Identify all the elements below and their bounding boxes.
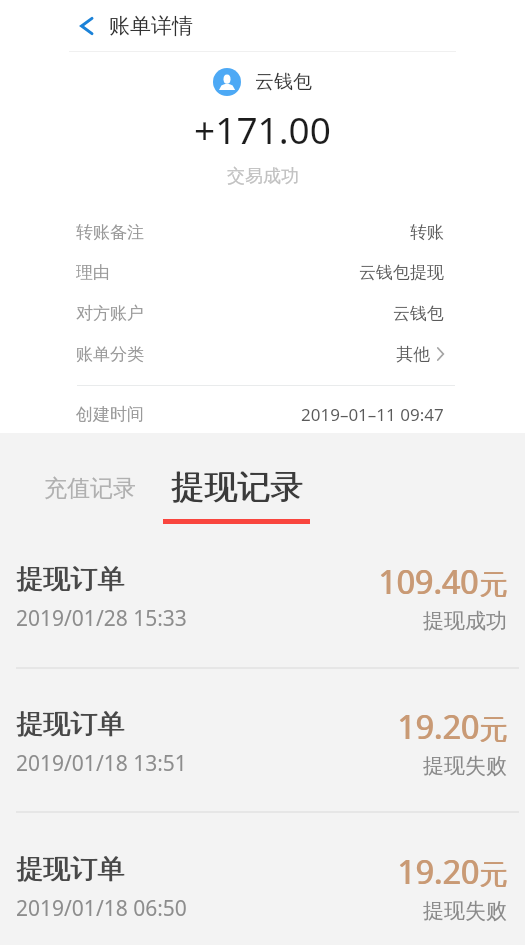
staticText: 2019–01–11 09:47	[301, 403, 444, 426]
staticText: 元	[480, 567, 508, 602]
staticText: 19.20	[397, 850, 479, 894]
staticText: 元	[479, 712, 507, 747]
staticText: 云钱包	[393, 303, 444, 324]
button[interactable]: 转账备注	[0, 212, 525, 252]
button[interactable]: 提现订单	[0, 700, 525, 805]
staticText: 元	[480, 712, 508, 747]
staticText: 元	[480, 857, 508, 892]
staticText: 转账备注	[76, 222, 144, 243]
button[interactable]: 充值记录	[36, 468, 144, 509]
staticText: +171.00	[194, 104, 331, 154]
button[interactable]: 对方账户	[0, 293, 525, 333]
staticText: 提现订单	[17, 852, 125, 886]
staticText: 账单分类	[76, 344, 144, 365]
staticText: 2019/01/18 06:50	[16, 894, 187, 923]
staticText: 元	[479, 857, 507, 892]
button[interactable]: 提现订单	[0, 845, 525, 945]
staticText: 创建时间	[76, 404, 144, 425]
staticText: 2019/01/18 13:51	[16, 749, 187, 778]
staticText: 充值记录	[44, 474, 136, 503]
staticText: 提现订单	[16, 562, 124, 596]
button[interactable]: 账单分类	[0, 334, 525, 374]
button[interactable]: 理由	[0, 252, 525, 292]
staticText: 2019/01/28 15:33	[16, 604, 187, 633]
staticText: 云钱包	[255, 70, 312, 94]
staticText: 109.40	[378, 560, 479, 604]
staticText: 交易成功	[227, 165, 299, 188]
staticText: 109.40	[379, 560, 480, 604]
staticText: 提现失败	[423, 753, 507, 779]
button[interactable]: Back	[63, 0, 109, 52]
staticText: 元	[479, 567, 507, 602]
staticText: 提现订单	[17, 707, 125, 741]
staticText: 其他	[396, 344, 430, 365]
staticText: 19.20	[397, 705, 479, 749]
button[interactable]: 创建时间	[0, 394, 525, 434]
staticText: 19.20	[398, 705, 480, 749]
staticText: 云钱包提现	[359, 262, 444, 283]
staticText: 提现失败	[423, 898, 507, 924]
staticText: 19.20	[398, 850, 480, 894]
staticText: 提现订单	[16, 707, 124, 741]
staticText: 提现成功	[423, 608, 507, 634]
staticText: 对方账户	[76, 303, 144, 324]
button[interactable]: 提现订单	[0, 555, 525, 660]
staticText: 账单详情	[109, 13, 193, 39]
staticText: 提现记录	[171, 466, 303, 508]
staticText: 提现记录	[172, 466, 304, 508]
staticText: 提现订单	[16, 852, 124, 886]
staticText: 提现订单	[17, 562, 125, 596]
staticText: 转账	[410, 222, 444, 243]
staticText: 理由	[76, 262, 110, 283]
button[interactable]: 提现记录	[163, 466, 310, 524]
